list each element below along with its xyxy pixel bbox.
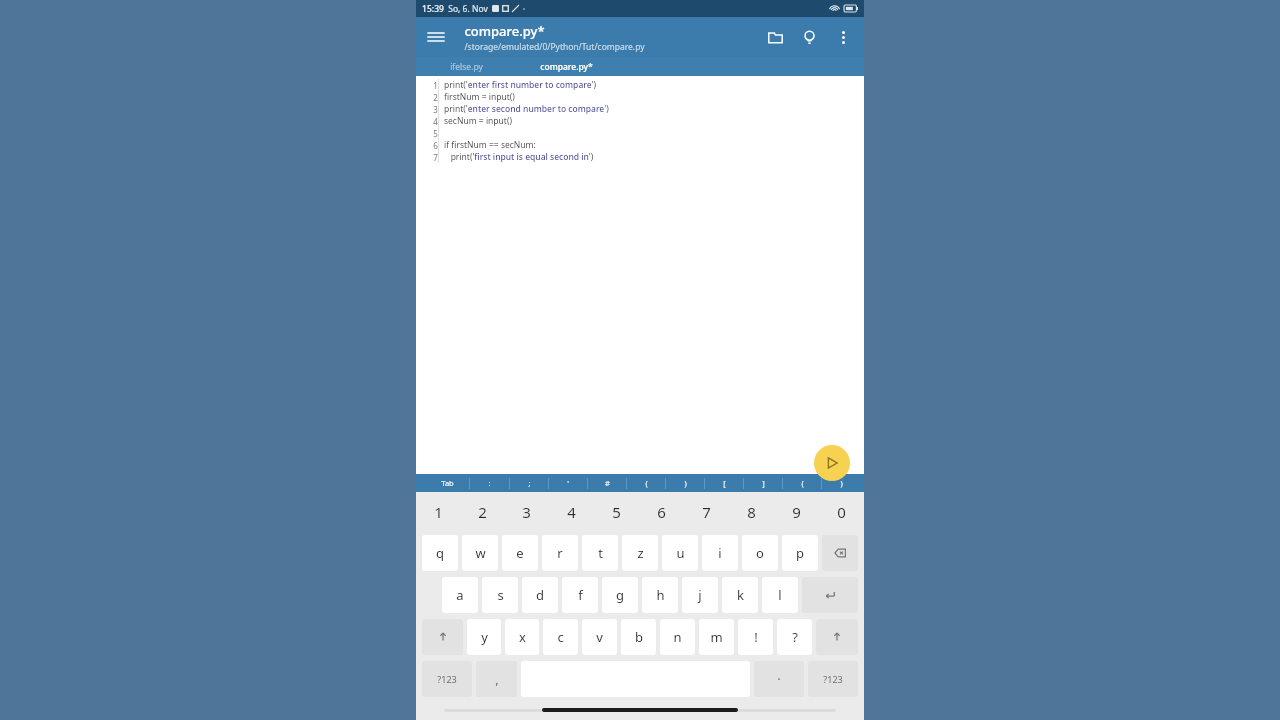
button[interactable]: r (542, 535, 578, 571)
button[interactable]: ' (549, 474, 587, 492)
button[interactable]: Enter (802, 577, 858, 613)
button[interactable]: 3 (504, 492, 549, 532)
button[interactable]: f (562, 577, 598, 613)
button[interactable]: z (622, 535, 658, 571)
staticText: ? (792, 628, 798, 646)
button[interactable]: b (621, 619, 656, 655)
button[interactable]: m (699, 619, 734, 655)
staticText: f (578, 586, 583, 604)
staticText: /storage/emulated/0/Python/Tut/compare.p… (464, 41, 645, 53)
button[interactable]: s (482, 577, 518, 613)
button[interactable]: 0 (819, 492, 864, 532)
button[interactable]: g (602, 577, 638, 613)
button[interactable]: k (722, 577, 758, 613)
button[interactable]: t (582, 535, 618, 571)
button[interactable]: Run (814, 445, 850, 481)
staticText: i (718, 544, 722, 562)
button[interactable]: Tab (426, 474, 469, 492)
staticText: o (756, 544, 764, 562)
button[interactable]: j (682, 577, 718, 613)
button[interactable]: ] (744, 474, 782, 492)
staticText: 5 (612, 502, 621, 522)
button[interactable]: h (642, 577, 678, 613)
button[interactable]: [ (705, 474, 743, 492)
button[interactable]: 7 (684, 492, 729, 532)
button[interactable]: 4 (549, 492, 594, 532)
button[interactable]: o (742, 535, 778, 571)
button[interactable]: n (660, 619, 695, 655)
button[interactable]: ( (783, 474, 821, 492)
staticText: ! (754, 628, 758, 646)
button[interactable]: ) (666, 474, 704, 492)
button[interactable]: ?123 (808, 661, 858, 697)
staticText: 7 (702, 502, 711, 522)
staticText: 6 (657, 502, 666, 522)
staticText: v (596, 628, 603, 646)
button[interactable]: , (476, 661, 517, 697)
button[interactable]: Navigation menu (416, 17, 456, 57)
staticText: print('first input is equal second in') (444, 151, 594, 163)
button[interactable]: More options (826, 20, 860, 54)
button[interactable]: · (754, 661, 804, 697)
staticText: u (676, 544, 685, 562)
staticText: 3 (522, 502, 531, 522)
button[interactable]: c (543, 619, 578, 655)
staticText: d (536, 586, 544, 604)
staticText: 15:39 (422, 3, 444, 15)
button[interactable]: Backspace (822, 535, 858, 571)
staticText: compare.py* (464, 22, 545, 40)
staticText: 9 (792, 502, 801, 522)
button[interactable]: e (502, 535, 538, 571)
button[interactable]: u (662, 535, 698, 571)
button[interactable]: ?123 (422, 661, 472, 697)
staticText: l (778, 586, 782, 604)
button[interactable]: w (462, 535, 498, 571)
button[interactable]: 6 (639, 492, 684, 532)
button[interactable]: y (467, 619, 501, 655)
button[interactable]: p (782, 535, 818, 571)
button[interactable]: Open folder (758, 20, 792, 54)
button[interactable]: 2 (460, 492, 504, 532)
staticText: j (698, 586, 702, 604)
button[interactable]: x (505, 619, 539, 655)
staticText: if firstNum == secNum: (444, 139, 536, 151)
staticText: , (495, 670, 499, 688)
button[interactable]: 1 (416, 492, 460, 532)
button[interactable]: Shift (422, 619, 463, 655)
staticText: ( (645, 478, 648, 488)
staticText: ?123 (437, 673, 457, 685)
button[interactable]: d (522, 577, 558, 613)
button[interactable]: Shift (816, 619, 858, 655)
staticText: h (656, 586, 665, 604)
button[interactable]: l (762, 577, 798, 613)
button[interactable]: compare.py* (516, 57, 616, 76)
staticText: ) (840, 478, 843, 488)
staticText: 2 (433, 92, 438, 103)
button[interactable]: v (582, 619, 617, 655)
button[interactable]: 5 (594, 492, 639, 532)
staticText: So, 6. Nov (448, 3, 488, 15)
staticText: g (616, 586, 624, 604)
staticText: e (516, 544, 524, 562)
staticText: # (605, 478, 610, 488)
button[interactable]: : (470, 474, 509, 492)
button[interactable]: ; (510, 474, 548, 492)
button[interactable]: ifelse.py (416, 57, 516, 76)
button[interactable]: ) (822, 474, 860, 492)
button[interactable]: ? (777, 619, 812, 655)
button[interactable]: q (422, 535, 458, 571)
staticText: 6 (433, 140, 438, 151)
button[interactable]: # (588, 474, 626, 492)
staticText: t (598, 544, 603, 562)
staticText: [ (723, 478, 726, 488)
staticText: ?123 (823, 673, 843, 685)
button[interactable]: 9 (774, 492, 819, 532)
button[interactable]: a (442, 577, 478, 613)
button[interactable]: 8 (729, 492, 774, 532)
button[interactable]: ! (738, 619, 773, 655)
button[interactable]: ( (627, 474, 665, 492)
staticText: y (481, 628, 488, 646)
button[interactable]: i (702, 535, 738, 571)
button[interactable]: Hints (792, 20, 826, 54)
